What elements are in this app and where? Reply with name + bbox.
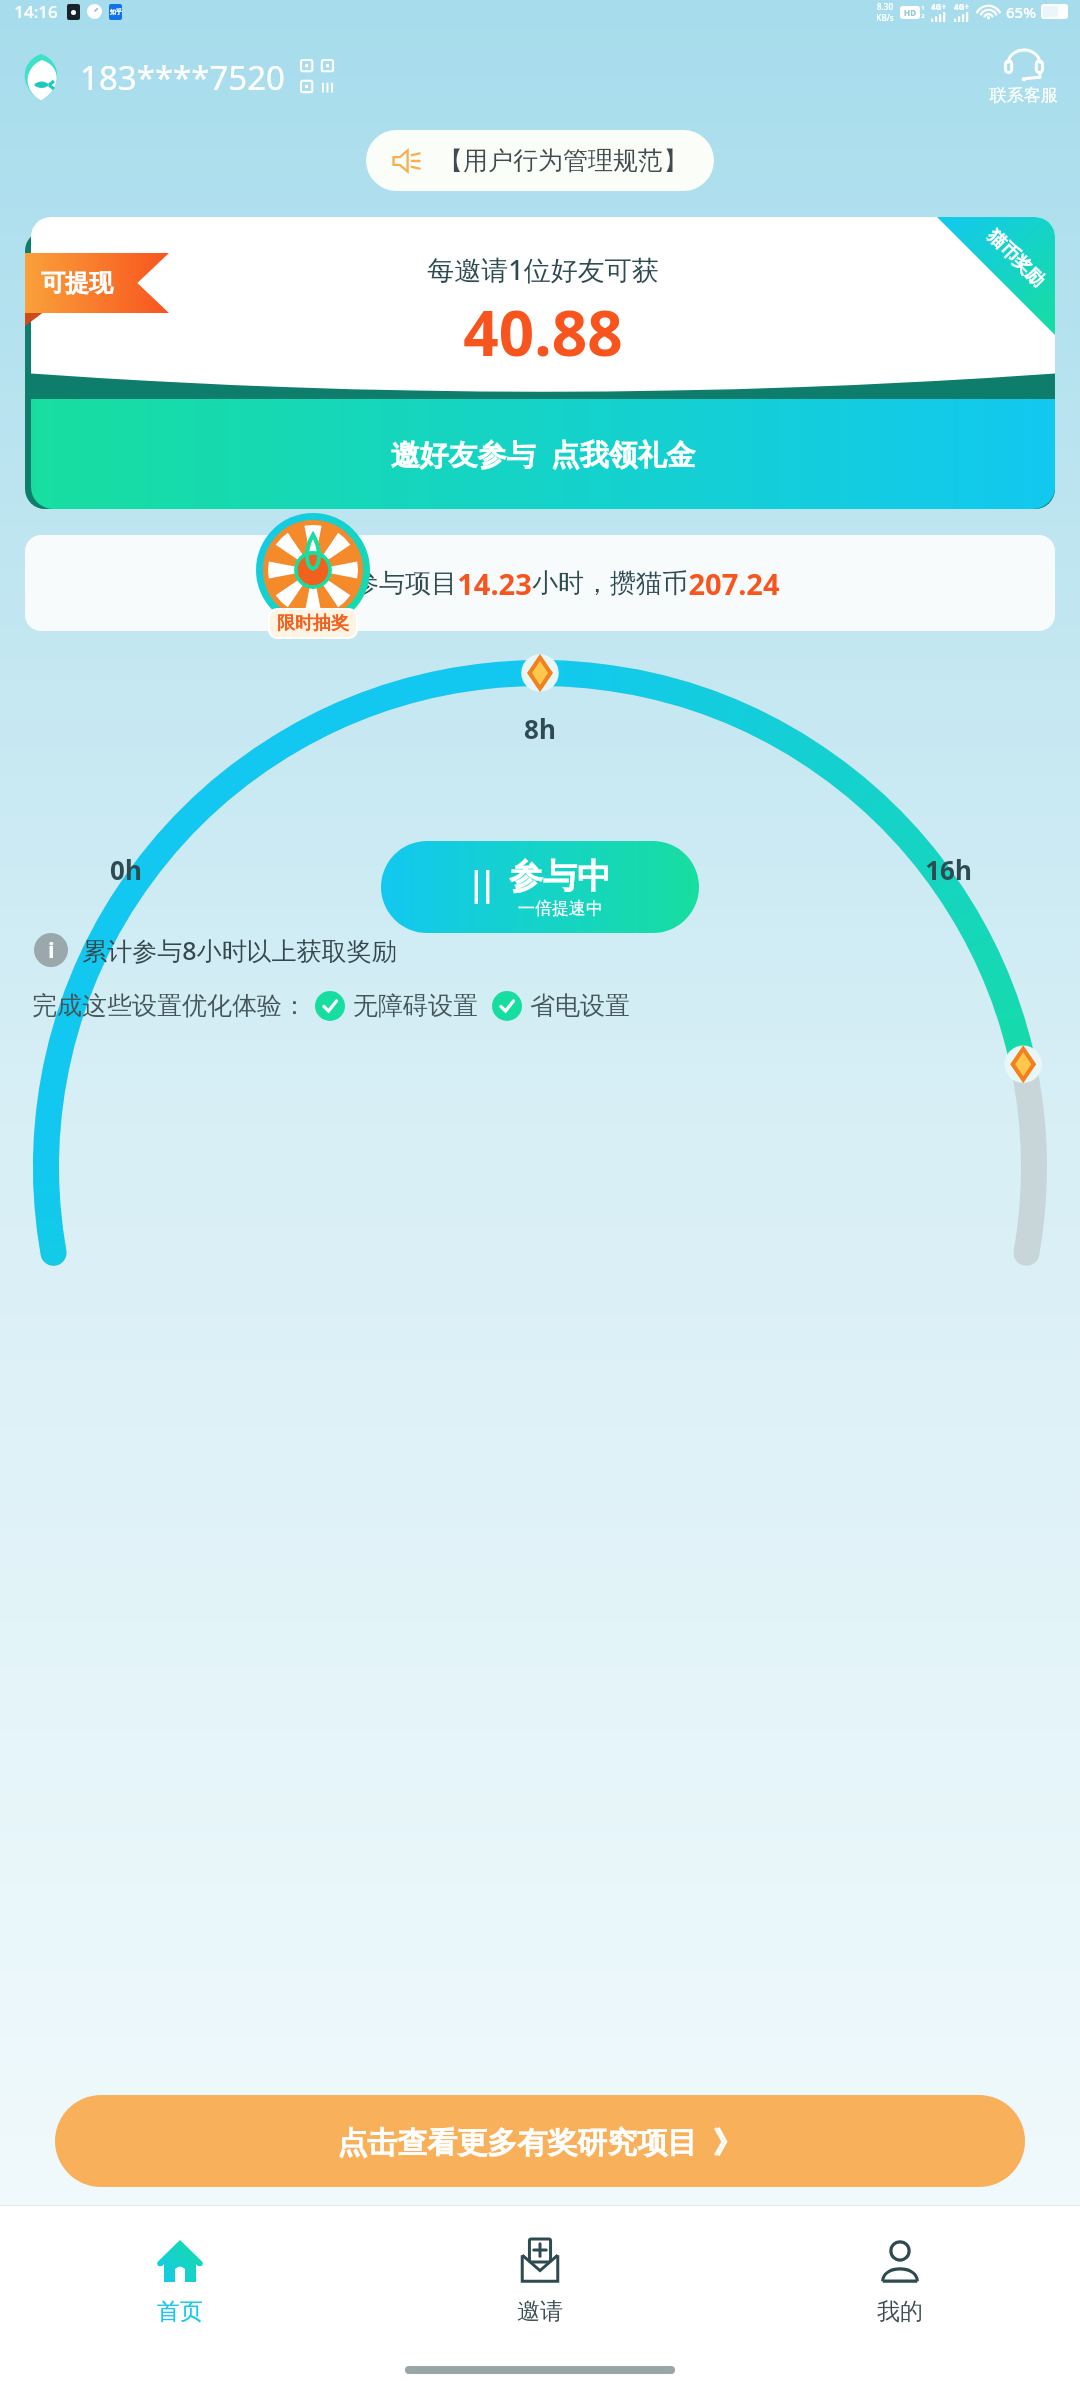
staticText: 每邀请1位好友可获 [427,251,659,288]
button[interactable]: 扫一扫 [299,58,337,96]
staticText: 14.23 [457,564,532,603]
staticText: 邀好友参与 点我领礼金 [390,434,696,474]
staticText: 无障碍设置 [353,990,478,1021]
staticText: 完成这些设置优化体验： [32,990,307,1021]
staticText: 点击查看更多有奖研究项目 》 [337,2121,743,2162]
staticText: 1 [921,4,925,12]
button[interactable]: 首页 [0,2227,360,2332]
staticText: 16h [925,852,972,887]
staticText: 8h [524,711,556,746]
staticText: 0h [110,852,142,887]
button[interactable]: 限时抽奖 [253,513,373,639]
staticText: 累计参与8小时以上获取奖励 [82,933,397,967]
staticText: 4G+ [931,1,946,12]
button[interactable]: 省电设置 [492,990,630,1021]
button[interactable]: 点击查看更多有奖研究项目 》 [55,2095,1025,2187]
staticText: 我的 [877,2297,923,2326]
staticText: 可提现 [41,268,113,298]
staticText: 首页 [157,2297,203,2326]
staticText: KB/s [876,12,894,23]
button[interactable]: 今日参与项目 [25,535,1055,631]
staticText: i [48,936,55,965]
staticText: 小时，攒猫币 [532,567,688,600]
staticText: 2 [921,12,925,20]
staticText: 14:16 [14,0,58,23]
button[interactable]: 联系客服 [986,44,1062,110]
button[interactable]: 每邀请1位好友可获 [31,217,1055,509]
staticText: 省电设置 [530,990,630,1021]
staticText: 限时抽奖 [277,612,349,635]
staticText: 65% [1006,2,1036,22]
staticText: 183****7520 [80,55,285,100]
button[interactable]: 我的 [720,2227,1080,2332]
staticText: 【用户行为管理规范】 [438,145,688,176]
staticText: 今日参与项目 [301,567,457,600]
button[interactable]: 无障碍设置 [315,990,478,1021]
staticText: HD [904,7,916,18]
staticText: 知乎 [110,8,122,16]
staticText: 4G+ [954,1,969,12]
button[interactable]: i [34,933,397,967]
button[interactable]: 【用户行为管理规范】 [366,130,714,191]
staticText: 邀请 [517,2297,563,2326]
staticText: 一倍提速中 [518,898,603,919]
button[interactable]: 参与中 [381,841,699,933]
staticText: 联系客服 [990,85,1058,106]
staticText: 8.30 [877,1,893,12]
staticText: 40.88 [463,290,623,374]
staticText: 猫币奖励 [982,225,1050,292]
staticText: 参与中 [509,855,611,898]
button[interactable]: 邀请 [360,2227,720,2332]
staticText: 207.24 [688,564,780,603]
